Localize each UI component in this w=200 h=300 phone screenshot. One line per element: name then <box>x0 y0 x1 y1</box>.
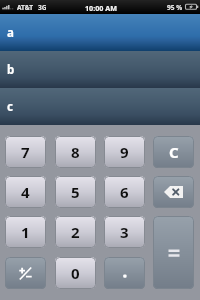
staticText: 2 <box>71 222 80 242</box>
staticText: 10:00 AM <box>85 3 118 13</box>
staticText: 5 <box>71 182 80 202</box>
staticText: 3G <box>38 3 47 12</box>
button[interactable]: 0 <box>55 257 96 289</box>
staticText: a <box>7 25 14 41</box>
staticText: c <box>7 99 13 115</box>
staticText: 95 % <box>167 3 183 12</box>
staticText: 8 <box>71 142 80 162</box>
staticText: AT&T <box>17 3 34 12</box>
staticText: C <box>169 142 179 162</box>
button[interactable]: b <box>0 51 200 88</box>
button[interactable]: 5 <box>55 176 96 208</box>
button[interactable]: Toggle sign <box>5 257 46 289</box>
staticText: 6 <box>120 182 129 202</box>
button[interactable]: 6 <box>104 176 145 208</box>
button[interactable]: C <box>153 136 194 168</box>
staticText: 7 <box>21 142 30 162</box>
button[interactable]: 3 <box>104 216 145 248</box>
button[interactable]: 1 <box>5 216 46 248</box>
button[interactable]: 7 <box>5 136 46 168</box>
button[interactable]: 2 <box>55 216 96 248</box>
button[interactable]: Equals <box>153 216 194 289</box>
staticText: 4 <box>21 182 30 202</box>
button[interactable]: 8 <box>55 136 96 168</box>
button[interactable]: Backspace <box>153 176 194 208</box>
staticText: 9 <box>120 142 129 162</box>
staticText: 1 <box>21 222 30 242</box>
button[interactable]: c <box>0 88 200 125</box>
staticText: 3 <box>120 222 129 242</box>
staticText: b <box>7 62 15 78</box>
button[interactable]: a <box>0 14 200 51</box>
button[interactable]: 4 <box>5 176 46 208</box>
button[interactable]: 9 <box>104 136 145 168</box>
button[interactable]: Decimal point <box>104 257 145 289</box>
staticText: 0 <box>71 263 80 283</box>
